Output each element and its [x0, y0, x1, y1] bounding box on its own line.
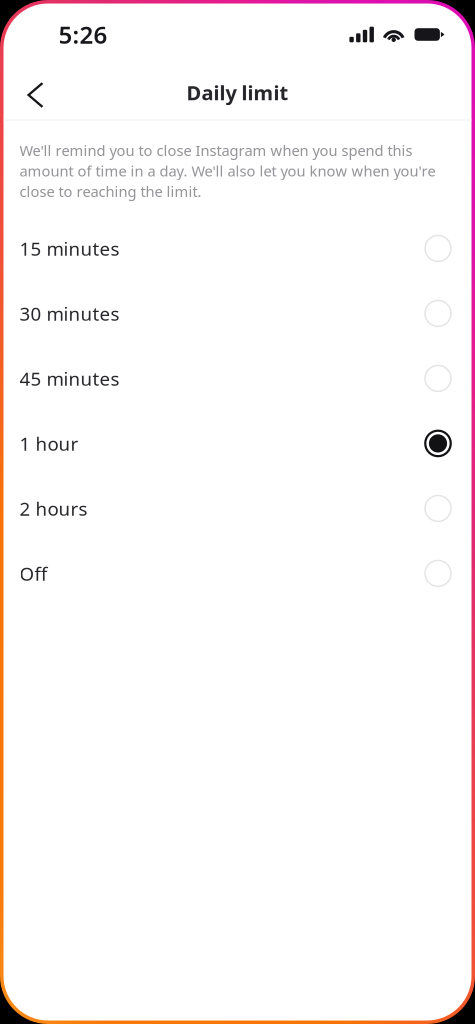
button[interactable]: 45 minutes — [3, 346, 471, 411]
staticText: 2 hours — [19, 496, 87, 521]
button[interactable]: 2 hours — [3, 476, 471, 541]
button[interactable]: 1 hour — [3, 411, 471, 476]
staticText: We'll remind you to close Instagram when… — [19, 140, 435, 201]
staticText: Daily limit — [186, 79, 288, 106]
button[interactable]: 30 minutes — [3, 281, 471, 346]
staticText: Off — [19, 561, 47, 586]
staticText: 30 minutes — [19, 301, 119, 326]
staticText: 15 minutes — [19, 236, 119, 261]
button[interactable]: Off — [3, 541, 471, 606]
button[interactable]: 15 minutes — [3, 216, 471, 281]
staticText: 5:26 — [58, 19, 107, 50]
button[interactable]: Back — [11, 65, 59, 119]
staticText: 1 hour — [19, 431, 78, 456]
staticText: 45 minutes — [19, 366, 119, 391]
